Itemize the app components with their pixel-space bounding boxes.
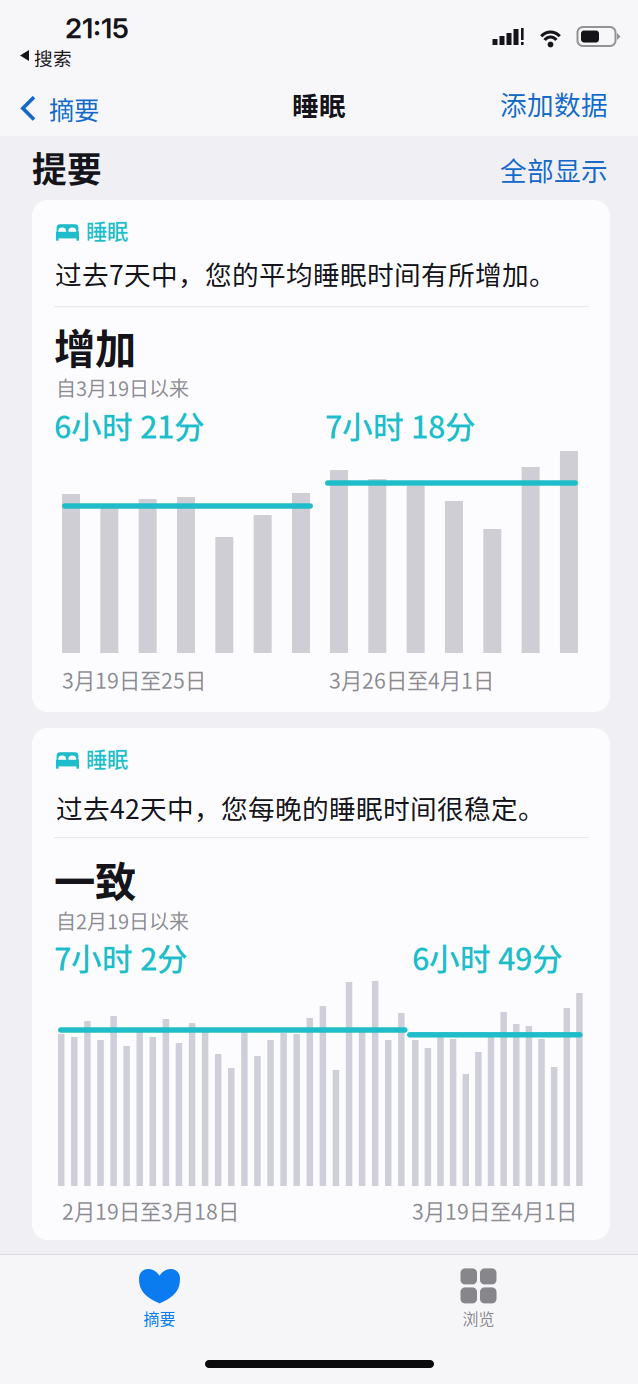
staticText: 睡眠: [86, 215, 128, 246]
staticText: 过去7天中，您的平均睡眠时间有所增加。: [55, 254, 556, 293]
staticText: 过去42天中，您每晚的睡眠时间很稳定。: [56, 788, 545, 827]
staticText: 自3月19日以来: [56, 373, 189, 402]
button[interactable]: 浏览: [319, 1261, 638, 1337]
staticText: 3月26日至4月1日: [329, 664, 494, 695]
staticText: 一致: [54, 849, 136, 909]
staticText: 自2月19日以来: [56, 906, 189, 935]
staticText: 3月19日至25日: [62, 664, 206, 695]
staticText: 添加数据: [500, 84, 608, 123]
staticText: 睡眠: [292, 85, 346, 124]
staticText: 浏览: [462, 1306, 494, 1330]
button[interactable]: 摘要: [0, 1261, 319, 1337]
staticText: 全部显示: [500, 150, 608, 189]
staticText: 7小时 2分: [54, 935, 188, 979]
staticText: 摘要: [49, 90, 99, 127]
staticText: 2月19日至3月18日: [62, 1195, 239, 1226]
button[interactable]: 全部显示: [500, 150, 608, 189]
staticText: 21:15: [65, 11, 129, 45]
staticText: 7小时 18分: [325, 403, 476, 447]
staticText: 6小时 21分: [54, 403, 205, 447]
staticText: 搜索: [34, 44, 72, 71]
button[interactable]: 添加数据: [500, 84, 608, 123]
staticText: 6小时 49分: [412, 935, 563, 979]
staticText: 睡眠: [86, 743, 128, 774]
staticText: 3月19日至4月1日: [412, 1195, 577, 1226]
button[interactable]: 返回 摘要: [21, 90, 99, 127]
staticText: 增加: [54, 316, 136, 376]
staticText: 摘要: [143, 1306, 175, 1330]
staticText: 提要: [32, 142, 102, 192]
